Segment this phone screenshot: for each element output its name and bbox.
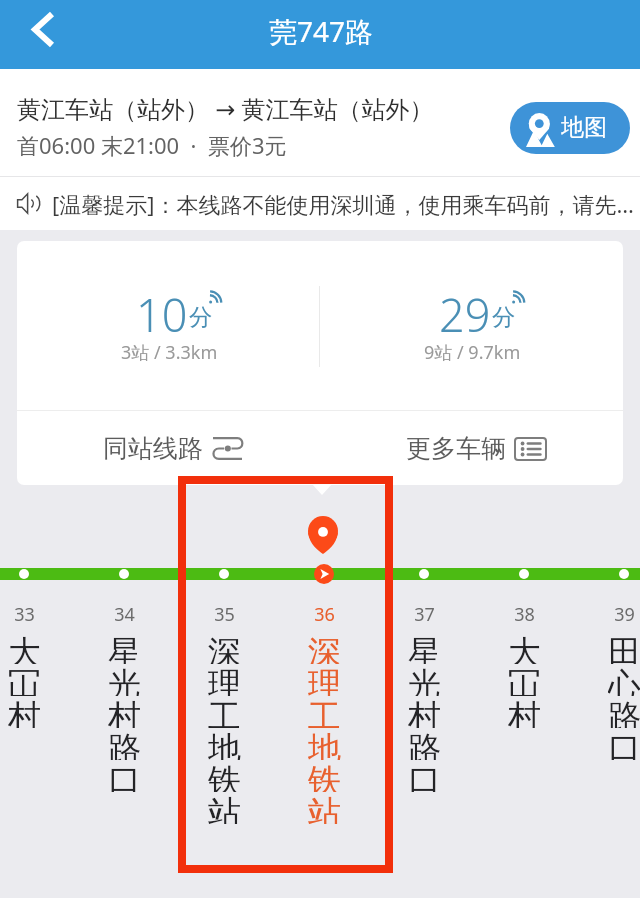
staticText: 35 xyxy=(214,602,235,627)
staticText: 口 xyxy=(608,728,640,760)
staticText: 37 xyxy=(414,602,435,627)
button[interactable]: Back xyxy=(14,6,72,64)
staticText: 地 xyxy=(208,728,241,760)
button[interactable]: 33 xyxy=(0,602,74,728)
staticText: 黄江车站（站外） → 黄江车站（站外） xyxy=(17,92,434,125)
staticText: 莞747路 xyxy=(269,12,374,50)
staticText: 33 xyxy=(14,602,35,627)
staticText: 村 xyxy=(508,696,541,728)
staticText: 村 xyxy=(108,696,141,728)
staticText: 36 xyxy=(314,602,335,627)
staticText: 深 xyxy=(208,632,241,664)
staticText: 大 xyxy=(508,632,541,664)
staticText: 村 xyxy=(408,696,441,728)
button[interactable]: 更多车辆 xyxy=(320,411,623,485)
staticText: 光 xyxy=(108,664,141,696)
staticText: 站 xyxy=(208,792,241,824)
staticText: 冚 xyxy=(8,664,41,696)
button[interactable]: 37 xyxy=(374,602,474,792)
staticText: 路 xyxy=(408,728,441,760)
staticText: 铁 xyxy=(208,760,241,792)
staticText: 38 xyxy=(514,602,535,627)
staticText: 29 xyxy=(439,284,491,345)
staticText: 光 xyxy=(408,664,441,696)
button[interactable]: 35 xyxy=(174,602,274,824)
staticText: [温馨提示]：本线路不能使用深圳通，使用乘车码前，请先… xyxy=(52,189,634,219)
staticText: 同站线路 xyxy=(103,433,203,464)
staticText: 星 xyxy=(408,632,441,664)
button[interactable]: [温馨提示]：本线路不能使用深圳通，使用乘车码前，请先… xyxy=(0,177,640,230)
button[interactable]: 同站线路 xyxy=(17,411,320,485)
staticText: 工 xyxy=(308,696,341,728)
button[interactable]: 36 xyxy=(274,602,374,824)
staticText: 10 xyxy=(136,284,188,345)
staticText: 3站 / 3.3km xyxy=(121,340,218,365)
staticText: 分 xyxy=(189,303,212,332)
staticText: 大 xyxy=(8,632,41,664)
staticText: 更多车辆 xyxy=(406,433,506,464)
staticText: 口 xyxy=(408,760,441,792)
staticText: 口 xyxy=(108,760,141,792)
staticText: 心 xyxy=(608,664,640,696)
staticText: 理 xyxy=(208,664,241,696)
button[interactable]: 地图 xyxy=(510,102,630,154)
staticText: 铁 xyxy=(308,760,341,792)
staticText: 工 xyxy=(208,696,241,728)
button[interactable]: 38 xyxy=(474,602,574,728)
staticText: 村 xyxy=(8,696,41,728)
staticText: 路 xyxy=(108,728,141,760)
staticText: 冚 xyxy=(508,664,541,696)
staticText: 深 xyxy=(308,632,341,664)
staticText: 站 xyxy=(308,792,341,824)
button[interactable]: 34 xyxy=(74,602,174,792)
button[interactable]: 39 xyxy=(574,602,640,760)
staticText: 34 xyxy=(114,602,135,627)
staticText: 39 xyxy=(614,602,635,627)
staticText: 田 xyxy=(608,632,640,664)
staticText: 9站 / 9.7km xyxy=(424,340,521,365)
staticText: 星 xyxy=(108,632,141,664)
staticText: 地 xyxy=(308,728,341,760)
staticText: 分 xyxy=(492,303,515,332)
staticText: 地图 xyxy=(561,113,607,142)
staticText: 首06:00 末21:00 · 票价3元 xyxy=(17,130,287,160)
staticText: 路 xyxy=(608,696,640,728)
staticText: 理 xyxy=(308,664,341,696)
